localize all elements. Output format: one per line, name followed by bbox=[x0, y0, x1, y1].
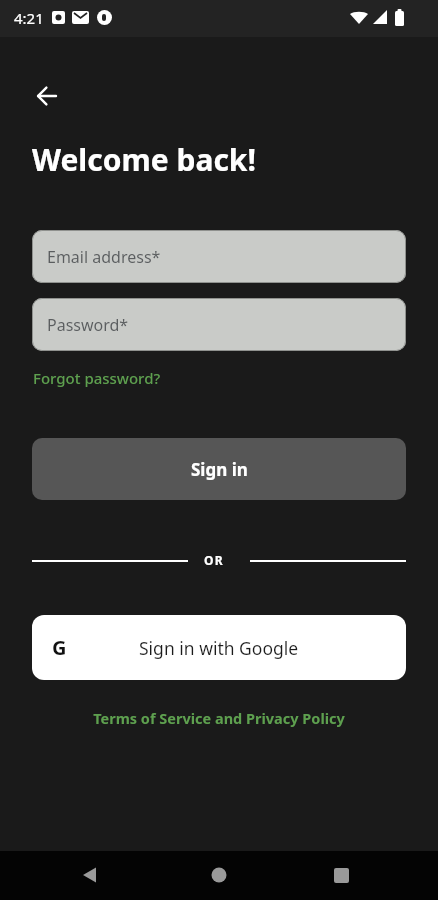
button[interactable] bbox=[203, 852, 235, 898]
staticText: Email address* bbox=[47, 246, 161, 268]
staticText: OR bbox=[204, 552, 224, 568]
button[interactable]: Password* bbox=[32, 298, 406, 351]
staticText: G bbox=[52, 634, 67, 661]
staticText: Sign in with Google bbox=[139, 636, 299, 660]
button[interactable] bbox=[28, 77, 66, 115]
button[interactable] bbox=[74, 852, 106, 898]
staticText: Terms of Service and Privacy Policy bbox=[93, 708, 345, 728]
staticText: Sign in bbox=[191, 458, 248, 481]
button[interactable]: Terms of Service and Privacy Policy bbox=[0, 708, 438, 728]
staticText: 4:21 bbox=[14, 8, 44, 28]
button[interactable]: Forgot password? bbox=[33, 368, 161, 388]
button[interactable]: Email address* bbox=[32, 230, 406, 283]
staticText: Password* bbox=[47, 314, 129, 336]
button[interactable]: G bbox=[32, 615, 406, 680]
button[interactable] bbox=[325, 852, 357, 898]
staticText: Welcome back! bbox=[32, 139, 256, 180]
staticText: Forgot password? bbox=[33, 368, 161, 388]
button[interactable]: Sign in bbox=[32, 438, 406, 500]
